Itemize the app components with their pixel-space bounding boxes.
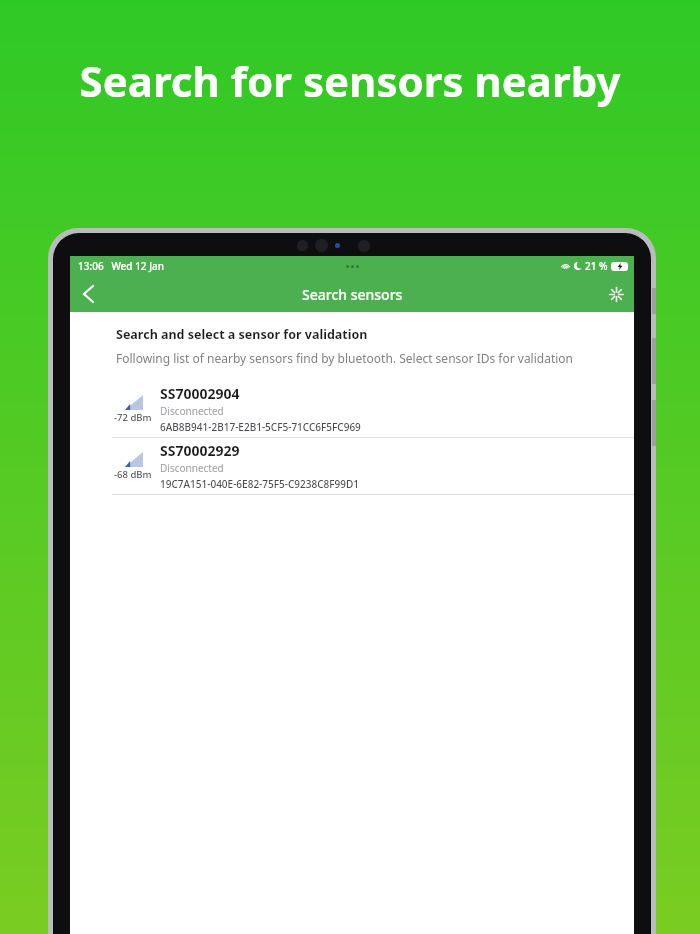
staticText: Search and select a sensor for validatio… [116,326,368,343]
button[interactable]: -68 dBm [70,438,634,494]
staticText: Search sensors [302,285,403,304]
staticText: Disconnected [160,404,224,418]
staticText: 6AB8B941-2B17-E2B1-5CF5-71CC6F5FC969 [160,420,361,434]
staticText: 13:06 Wed 12 Jan [78,259,165,273]
staticText: SS70002904 [160,384,240,403]
button[interactable]: -72 dBm [70,381,634,437]
staticText: 21 % [585,259,608,273]
button[interactable]: Refresh [598,276,634,312]
staticText: -72 dBm [114,411,152,424]
staticText: Following list of nearby sensors find by… [116,350,574,366]
staticText: 19C7A151-040E-6E82-75F5-C9238C8F99D1 [160,477,360,491]
staticText: SS70002929 [160,441,240,460]
button[interactable]: Back [70,276,106,312]
staticText: -68 dBm [114,468,152,481]
staticText: Search for sensors nearby [0,52,700,109]
staticText: Disconnected [160,461,224,475]
